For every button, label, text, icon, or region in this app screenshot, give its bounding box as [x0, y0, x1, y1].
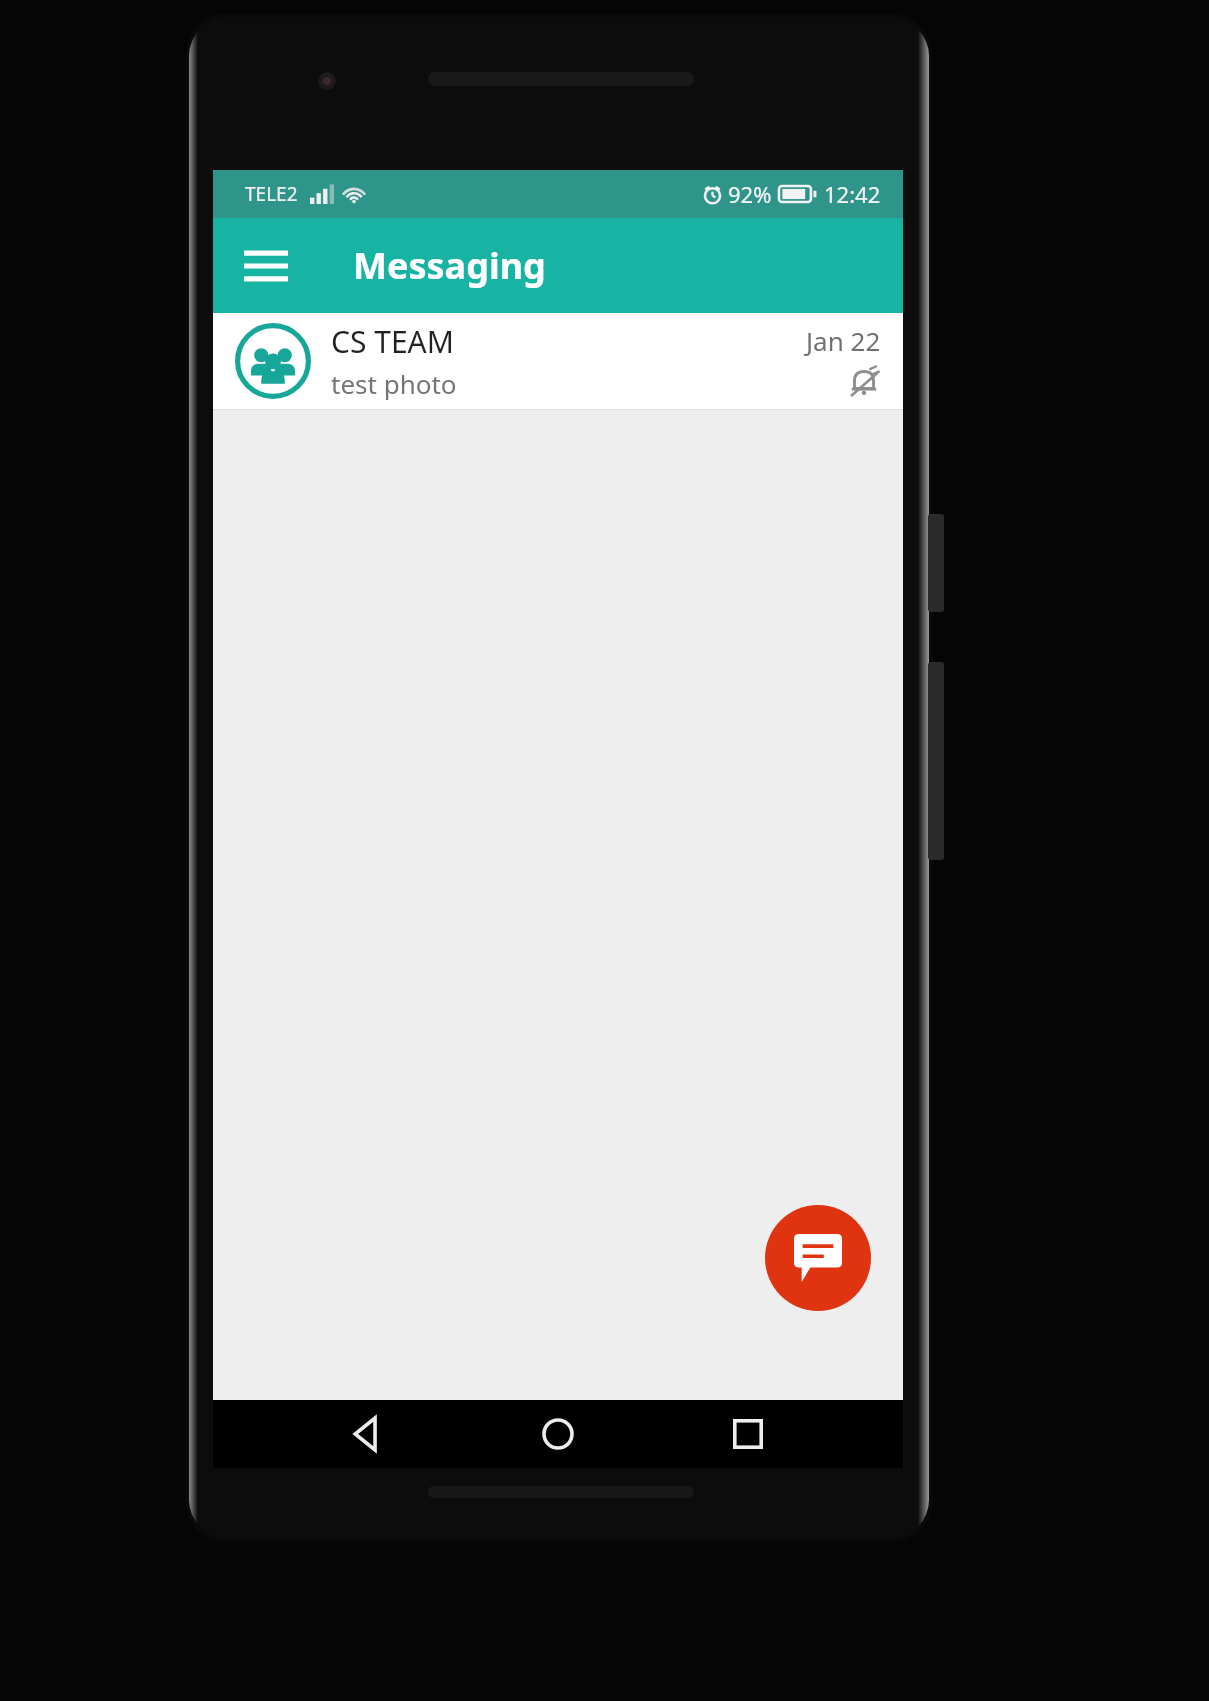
button[interactable]: Recent apps	[713, 1400, 783, 1468]
staticText: Jan 22	[806, 323, 881, 358]
button[interactable]: CS TEAM	[213, 313, 903, 410]
staticText: Messaging	[353, 241, 546, 290]
staticText: test photo	[331, 366, 457, 401]
staticText: CS TEAM	[331, 321, 454, 362]
button[interactable]: Back	[333, 1400, 403, 1468]
button[interactable]: Open navigation drawer	[231, 231, 301, 301]
staticText: TELE2	[245, 181, 298, 207]
button[interactable]: Home	[523, 1400, 593, 1468]
button[interactable]: New message	[765, 1205, 871, 1311]
staticText: 92%	[728, 179, 772, 209]
staticText: 12:42	[824, 179, 881, 209]
